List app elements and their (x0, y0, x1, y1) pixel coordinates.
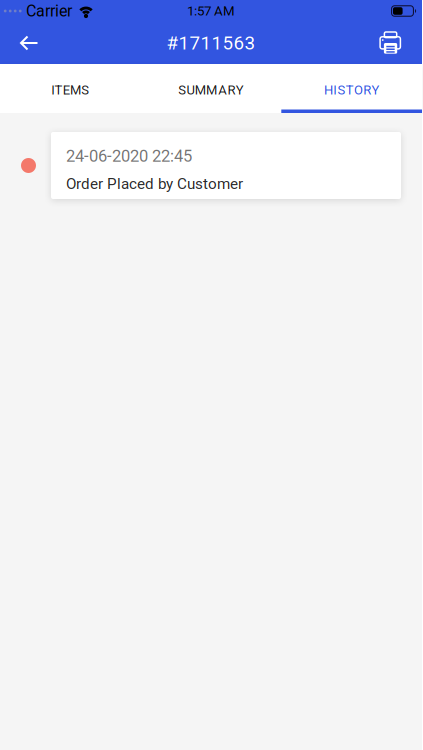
staticText: 1:57 AM (187, 3, 235, 19)
staticText: #1711563 (166, 32, 255, 54)
staticText: SUMMARY (178, 82, 244, 98)
button[interactable]: Print (378, 22, 422, 64)
staticText: Order Placed by Customer (66, 175, 243, 193)
button[interactable]: SUMMARY (141, 64, 281, 113)
staticText: Carrier (26, 2, 72, 20)
button[interactable]: HISTORY (281, 64, 422, 113)
staticText: HISTORY (324, 82, 379, 98)
button[interactable]: Back (0, 22, 40, 64)
button[interactable]: ITEMS (0, 64, 141, 113)
staticText: ITEMS (51, 82, 89, 98)
staticText: 24-06-2020 22:45 (66, 146, 192, 166)
